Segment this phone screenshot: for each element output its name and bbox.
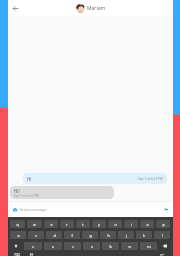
staticText: d	[53, 233, 56, 238]
staticText: x	[52, 244, 54, 249]
button[interactable]: l	[154, 231, 170, 239]
button[interactable]: w	[27, 220, 42, 228]
staticText: o	[146, 222, 149, 227]
button[interactable]: Camera	[10, 205, 19, 214]
button[interactable]: ?123	[10, 253, 23, 256]
staticText: s	[35, 233, 37, 238]
button[interactable]: s	[28, 231, 44, 239]
button[interactable]: h	[100, 231, 116, 239]
button[interactable]: v	[83, 242, 100, 250]
staticText: e	[50, 222, 53, 227]
staticText: l	[162, 233, 163, 238]
button[interactable]	[153, 253, 170, 256]
button[interactable]: p	[156, 220, 170, 228]
staticText: Mariam	[87, 5, 106, 12]
staticText: j	[126, 233, 127, 238]
button[interactable]: Back	[9, 2, 21, 14]
button[interactable]: d	[46, 231, 62, 239]
staticText: Sep 1 at 6:14 PM	[14, 194, 39, 198]
button[interactable]	[10, 242, 22, 250]
button[interactable]: u	[108, 220, 122, 228]
button[interactable]: o	[140, 220, 154, 228]
staticText: Sep 1 at 6:13 PM	[138, 177, 163, 181]
button[interactable]: c	[64, 242, 81, 250]
button[interactable]: e	[44, 220, 58, 228]
staticText: n	[128, 244, 131, 249]
button[interactable]: i	[124, 220, 138, 228]
button[interactable]: z	[24, 242, 42, 250]
staticText: z	[32, 244, 34, 249]
staticText: w	[33, 222, 36, 227]
button[interactable]	[159, 242, 170, 250]
staticText: b	[109, 244, 112, 249]
button[interactable]: j	[118, 231, 134, 239]
staticText: f	[71, 233, 73, 238]
button[interactable]: k	[136, 231, 152, 239]
staticText: c	[72, 244, 74, 249]
staticText: Hi	[27, 176, 32, 182]
button[interactable]: t	[76, 220, 90, 228]
button[interactable]: Mariam	[76, 4, 106, 13]
button[interactable]: a	[10, 231, 26, 239]
staticText: g	[89, 233, 92, 238]
staticText: p	[162, 222, 165, 227]
staticText: i	[131, 222, 132, 227]
staticText: Hi!	[14, 188, 20, 194]
button[interactable]: b	[102, 242, 119, 250]
button[interactable]: q	[10, 220, 25, 228]
button[interactable]: n	[121, 242, 138, 250]
staticText: k	[143, 233, 145, 238]
staticText: a	[17, 233, 20, 238]
button[interactable]: Send	[162, 205, 171, 214]
staticText: h	[107, 233, 110, 238]
staticText: r	[66, 222, 68, 227]
button[interactable]	[25, 253, 38, 256]
button[interactable]: g	[82, 231, 98, 239]
staticText: q	[16, 222, 19, 227]
staticText: v	[91, 244, 93, 249]
staticText: t	[82, 222, 84, 227]
button[interactable]: f	[64, 231, 80, 239]
button[interactable]: r	[60, 220, 74, 228]
button[interactable]: m	[140, 242, 157, 250]
staticText: ?123	[14, 253, 20, 256]
button[interactable]: x	[44, 242, 62, 250]
staticText: y	[98, 222, 100, 227]
staticText: u	[114, 222, 117, 227]
staticText: Send a message...	[20, 207, 49, 212]
button[interactable]: y	[92, 220, 106, 228]
staticText: m	[147, 244, 151, 249]
